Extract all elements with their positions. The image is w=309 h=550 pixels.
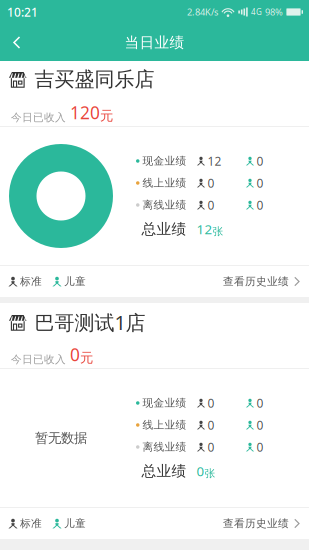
staticText: 0 [207,439,214,455]
staticText: 0 [256,175,263,191]
staticText: 4G [251,7,262,17]
staticText: 现金业绩 [142,396,186,409]
staticText: 0 [207,417,214,433]
staticText: 0 [256,439,263,455]
staticText: 离线业绩 [142,440,186,453]
staticText: 98% [265,6,283,18]
staticText: 120 [70,101,100,124]
staticText: 今日已收入 [11,353,66,366]
staticText: 标准 [20,275,42,288]
staticText: 查看历史业绩 [223,275,289,288]
staticText: 0 [207,395,214,411]
staticText: 0 [256,417,263,433]
button[interactable]: 查看历史业绩 [223,509,309,538]
staticText: 0 [256,153,263,169]
staticText: 今日已收入 [11,111,66,124]
staticText: 线上业绩 [142,176,186,189]
staticText: 巴哥测试1店 [34,309,145,336]
staticText: 0 [70,343,80,366]
staticText: 元 [80,350,93,366]
staticText: 离线业绩 [142,198,186,211]
staticText: 吉买盛同乐店 [34,67,154,92]
staticText: 0 [207,175,214,191]
staticText: 2.84K/s [187,6,218,18]
staticText: 总业绩 [141,220,186,238]
staticText: 12 [207,153,221,169]
staticText: 暂无数据 [35,430,87,446]
button[interactable]: 返回 [0,24,34,61]
staticText: 张 [212,225,223,238]
staticText: 线上业绩 [142,418,186,431]
button[interactable]: 查看历史业绩 [223,267,309,296]
staticText: 12 [196,220,212,238]
staticText: 当日业绩 [124,33,184,51]
staticText: 现金业绩 [142,154,186,167]
staticText: 标准 [20,517,42,530]
staticText: 0 [256,395,263,411]
staticText: 儿童 [64,517,86,530]
staticText: 0 [196,462,204,480]
staticText: 10:21 [7,4,38,20]
staticText: 查看历史业绩 [223,517,289,530]
staticText: 元 [100,108,113,124]
staticText: 0 [256,197,263,213]
staticText: 儿童 [64,275,86,288]
staticText: 总业绩 [141,462,186,480]
staticText: 0 [207,197,214,213]
staticText: 张 [204,467,215,480]
